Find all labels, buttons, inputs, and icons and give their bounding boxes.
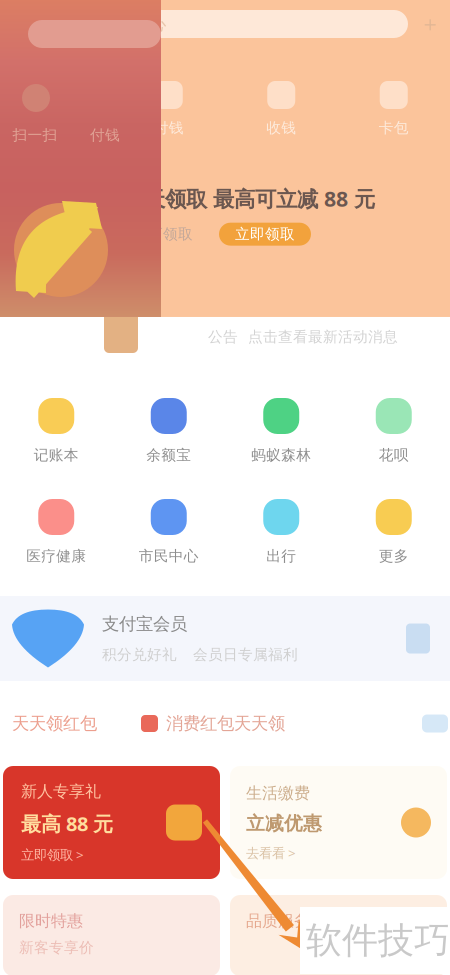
- staticText: 品质服务: [246, 911, 310, 931]
- button[interactable]: 天天领红包: [6, 710, 103, 736]
- staticText: 公告: [208, 328, 238, 346]
- button[interactable]: 更多: [337, 499, 450, 565]
- button[interactable]: 扫一扫: [0, 81, 112, 137]
- staticText: 积分兑好礼: [102, 646, 177, 664]
- staticText: ＋: [419, 11, 440, 37]
- staticText: 花呗: [379, 446, 409, 464]
- staticText: 天天领红包: [12, 713, 97, 734]
- staticText: 扫一扫: [34, 119, 79, 137]
- staticText: 生活缴费: [246, 783, 310, 803]
- button[interactable]: 卡包: [337, 81, 450, 137]
- button[interactable]: 付钱: [112, 81, 225, 137]
- button[interactable]: 花呗: [337, 398, 450, 464]
- button[interactable]: 收钱: [225, 81, 337, 137]
- button[interactable]: 记账本: [0, 398, 112, 464]
- staticText: 会员日专属福利: [193, 646, 298, 664]
- staticText: 支付宝会员: [102, 613, 187, 635]
- button[interactable]: 生活缴费: [230, 766, 447, 879]
- staticText: 新客专享价: [19, 939, 94, 957]
- staticText: 消费红包天天领: [166, 713, 285, 734]
- staticText: 市民中心: [139, 547, 199, 565]
- staticText: 扫一扫: [12, 126, 57, 144]
- staticText: 限时特惠: [19, 911, 83, 931]
- staticText: 立减优惠: [246, 812, 322, 835]
- staticText: 新人专享礼: [21, 782, 101, 801]
- staticText: 付钱: [90, 126, 120, 144]
- staticText: 余额宝: [146, 446, 191, 464]
- staticText: 出行: [266, 547, 296, 565]
- staticText: 付钱: [154, 119, 184, 137]
- button[interactable]: 品质服务: [230, 895, 447, 975]
- button[interactable]: 公告: [0, 317, 450, 357]
- staticText: 去看看 >: [246, 844, 296, 862]
- button[interactable]: More: [422, 714, 448, 732]
- staticText: 记账本: [34, 446, 79, 464]
- staticText: 收钱: [266, 119, 296, 137]
- staticText: 每日签到可领取: [88, 225, 193, 243]
- staticText: 立即领取: [235, 225, 295, 243]
- button[interactable]: 支付宝会员: [0, 596, 450, 681]
- button[interactable]: Scan code: [8, 12, 30, 36]
- button[interactable]: 限时特惠: [3, 895, 220, 975]
- button[interactable]: 立即领取: [219, 223, 311, 246]
- button[interactable]: 市民中心: [112, 499, 225, 565]
- staticText: 搜索 领券中心: [54, 13, 166, 35]
- staticText: 消费券天天领取 最高可立减 88 元: [60, 184, 375, 213]
- staticText: 蚂蚁森林: [251, 446, 311, 464]
- staticText: 卡包: [379, 119, 409, 137]
- staticText: 立即领取 >: [21, 846, 84, 863]
- button[interactable]: 余额宝: [112, 398, 225, 464]
- button[interactable]: 搜索 领券中心: [40, 10, 408, 38]
- button[interactable]: 出行: [225, 499, 337, 565]
- button[interactable]: 新人专享礼: [3, 766, 220, 879]
- staticText: 医疗健康: [26, 547, 86, 565]
- button[interactable]: 消费红包天天领: [137, 710, 289, 736]
- staticText: 最高 88 元: [21, 810, 113, 837]
- button[interactable]: 蚂蚁森林: [225, 398, 337, 464]
- button[interactable]: Add: [418, 12, 442, 36]
- button[interactable]: 医疗健康: [0, 499, 112, 565]
- staticText: 点击查看最新活动消息: [248, 328, 398, 346]
- staticText: 软件技巧: [306, 918, 450, 963]
- staticText: 更多: [379, 547, 409, 565]
